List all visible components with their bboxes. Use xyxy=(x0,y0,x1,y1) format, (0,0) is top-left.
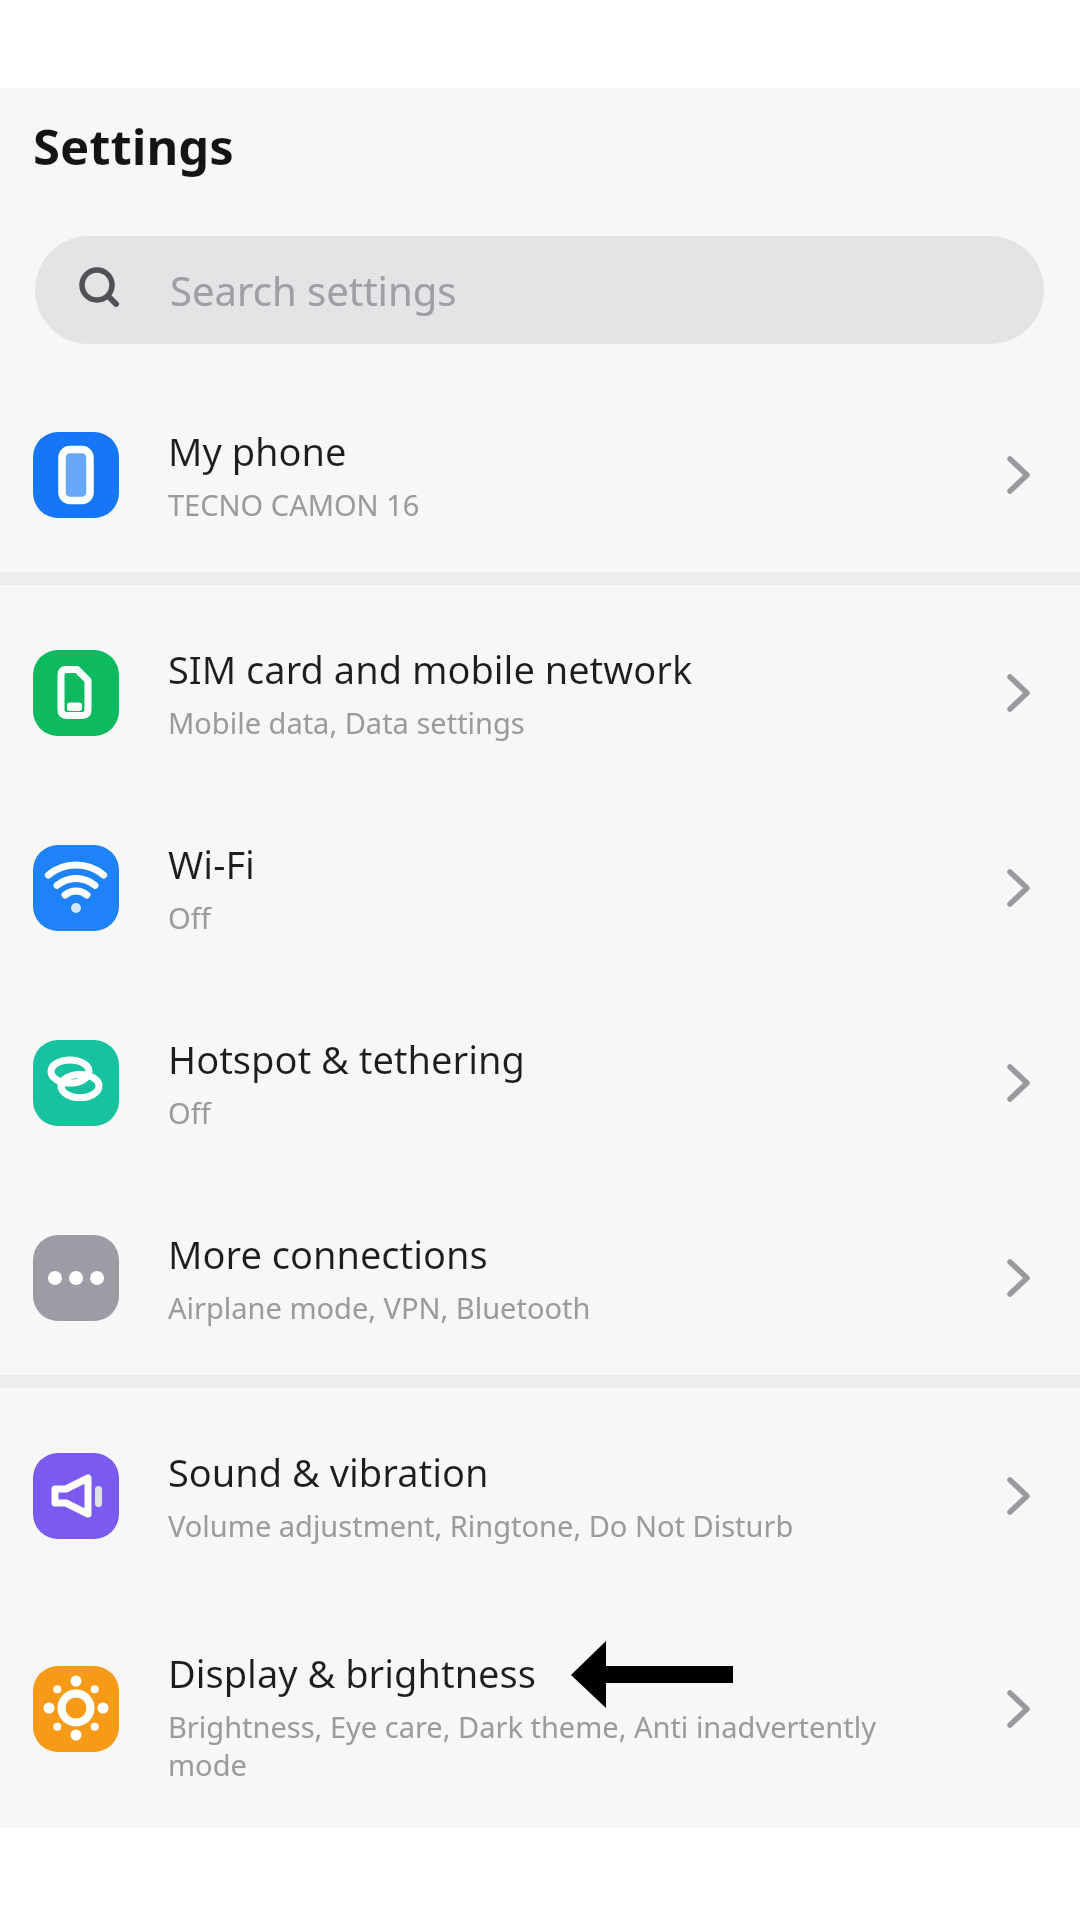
staticText: Off xyxy=(168,1093,211,1132)
staticText: Volume adjustment, Ringtone, Do Not Dist… xyxy=(168,1506,794,1545)
button[interactable]: Search settings xyxy=(35,236,1044,344)
button[interactable]: SIM card and mobile network xyxy=(0,595,1080,790)
staticText: Search settings xyxy=(170,263,457,317)
staticText: Display & brightness xyxy=(168,1647,536,1699)
staticText: More connections xyxy=(168,1228,488,1280)
staticText: Airplane mode, VPN, Bluetooth xyxy=(168,1288,591,1327)
staticText: Off xyxy=(168,898,211,937)
staticText: Hotspot & tethering xyxy=(168,1033,525,1085)
button[interactable]: My phone xyxy=(0,377,1080,572)
button[interactable]: Display & brightness xyxy=(0,1593,1080,1825)
staticText: Sound & vibration xyxy=(168,1446,489,1498)
button[interactable]: More connections xyxy=(0,1180,1080,1375)
button[interactable]: Hotspot & tethering xyxy=(0,985,1080,1180)
staticText: Mobile data, Data settings xyxy=(168,703,525,742)
staticText: Settings xyxy=(33,113,234,180)
staticText: TECNO CAMON 16 xyxy=(168,485,420,524)
staticText: Wi-Fi xyxy=(168,838,255,890)
button[interactable]: Sound & vibration xyxy=(0,1398,1080,1593)
staticText: My phone xyxy=(168,425,347,477)
button[interactable]: Wi-Fi xyxy=(0,790,1080,985)
staticText: Brightness, Eye care, Dark theme, Anti i… xyxy=(168,1707,876,1784)
staticText: SIM card and mobile network xyxy=(168,643,693,695)
